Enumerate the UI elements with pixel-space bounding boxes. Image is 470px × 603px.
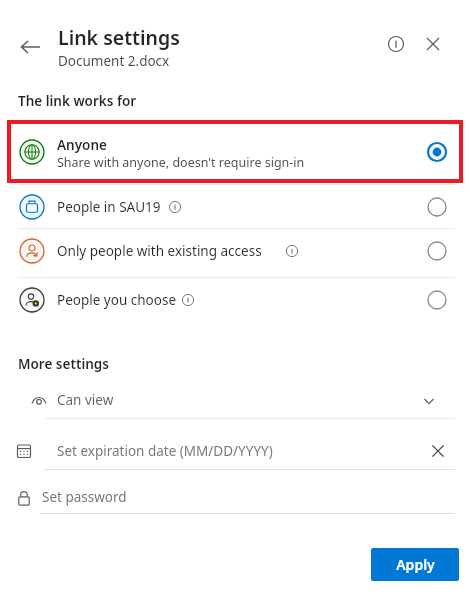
button[interactable]: People in SAU19 [0,186,470,228]
staticText: Can view [57,391,114,409]
staticText: People in SAU19 [57,198,161,216]
staticText: Document 2.docx [58,52,170,70]
button[interactable]: Set expiration date [45,432,415,470]
button[interactable]: People you choose [0,279,470,321]
staticText: Anyone [57,136,107,154]
staticText: Set expiration date (MM/DD/YYYY) [57,442,273,460]
staticText: Apply [396,555,435,574]
button[interactable]: Clear expiration date [425,438,451,464]
staticText: More settings [18,355,109,373]
button[interactable]: Only people with existing access [0,230,470,272]
button[interactable]: Set password [40,480,455,514]
button[interactable]: Back [14,30,48,64]
button[interactable]: Anyone [0,124,470,180]
staticText: Only people with existing access [57,242,262,260]
staticText: The link works for [18,92,137,110]
staticText: Set password [42,488,127,506]
staticText: People you choose [57,291,177,309]
button[interactable]: Can view [0,382,470,418]
staticText: Share with anyone, doesn't require sign-… [57,154,305,171]
button[interactable]: Information [382,30,410,58]
button[interactable]: Apply [371,548,459,581]
button[interactable]: Close [419,30,447,58]
staticText: Link settings [58,24,180,51]
